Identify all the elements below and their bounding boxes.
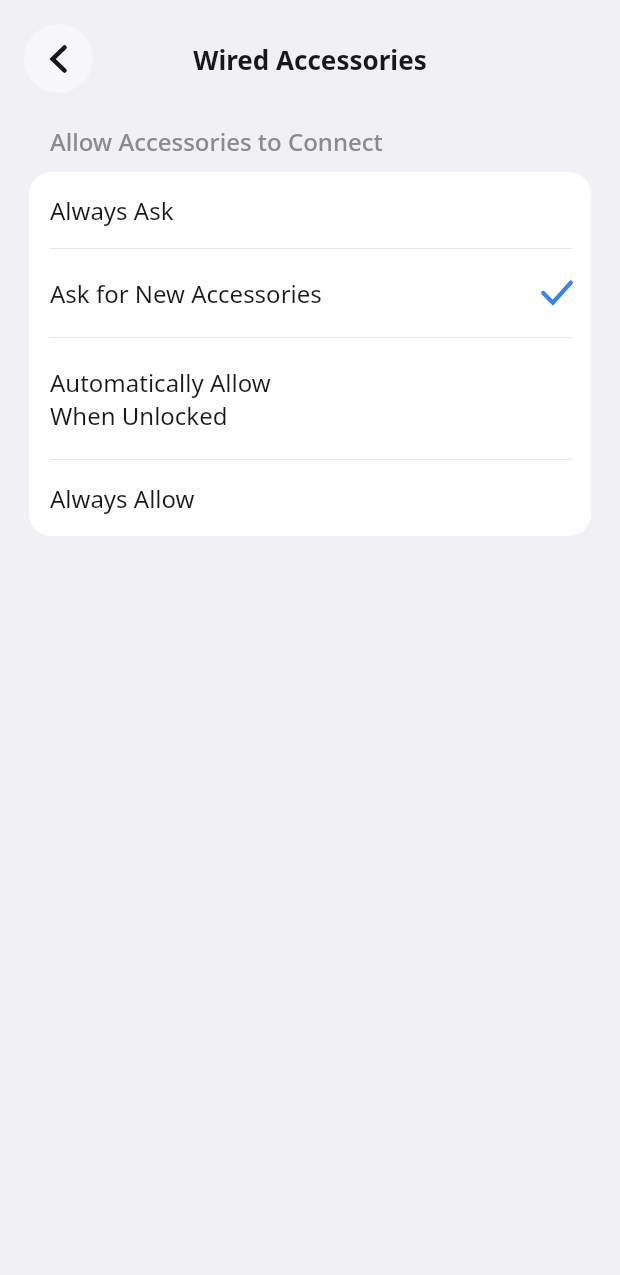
staticText: Allow Accessories to Connect — [50, 125, 383, 158]
staticText: Ask for New Accessories — [50, 277, 322, 310]
button[interactable]: Always Allow — [29, 460, 591, 536]
button[interactable]: Back — [24, 24, 93, 93]
staticText: Wired Accessories — [193, 42, 427, 76]
button[interactable]: Automatically Allow — [29, 338, 591, 459]
staticText: Always Ask — [50, 194, 174, 227]
staticText: Always Allow — [50, 482, 195, 515]
button[interactable]: Ask for New Accessories — [29, 249, 591, 337]
staticText: Automatically Allow — [50, 366, 271, 399]
staticText: When Unlocked — [50, 399, 228, 432]
button[interactable]: Always Ask — [29, 172, 591, 248]
